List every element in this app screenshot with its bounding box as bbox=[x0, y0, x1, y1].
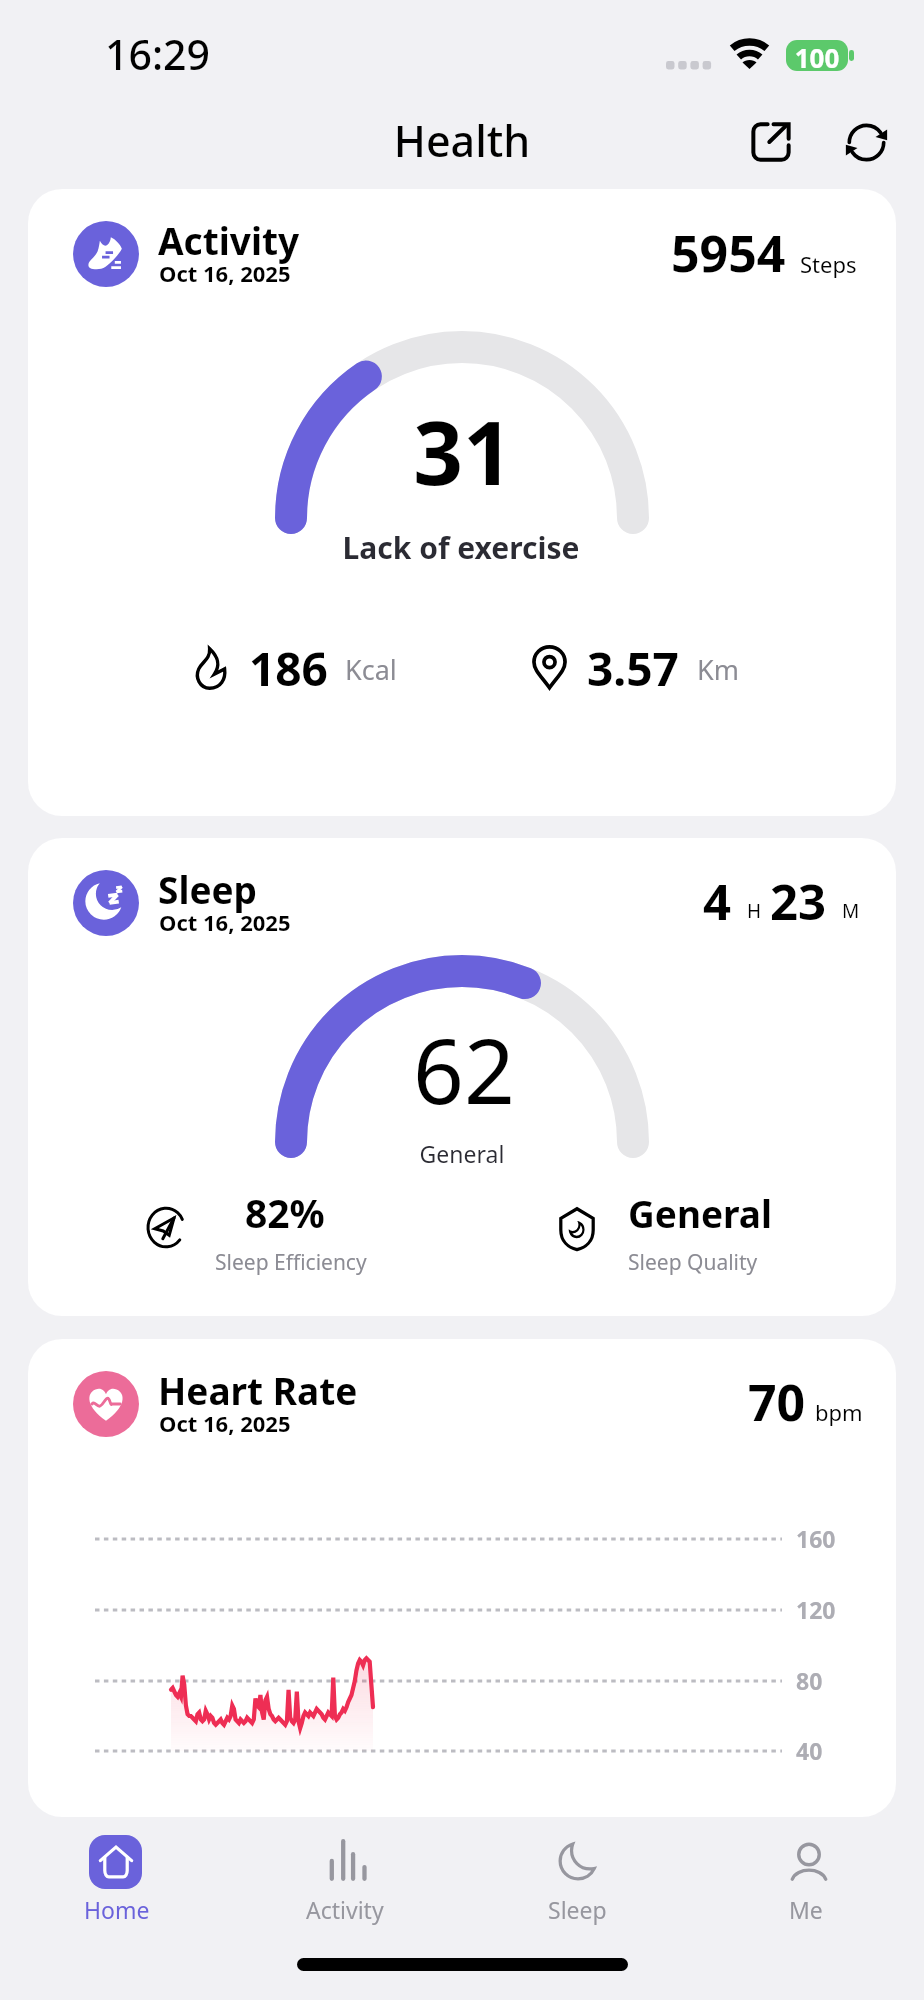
button[interactable] bbox=[759, 1822, 858, 1932]
button[interactable]: Refresh bbox=[829, 105, 903, 179]
staticText: Oct 16, 2025 bbox=[159, 1408, 291, 1438]
staticText: Oct 16, 2025 bbox=[159, 907, 291, 937]
button[interactable] bbox=[528, 1822, 627, 1932]
staticText: Me bbox=[789, 1894, 823, 1925]
staticText: Sleep bbox=[548, 1894, 607, 1925]
staticText: 5954 bbox=[671, 219, 786, 287]
staticText: M bbox=[842, 898, 860, 924]
staticText: 31 bbox=[29, 392, 896, 510]
staticText: 3.57 bbox=[587, 637, 679, 700]
staticText: 70 bbox=[748, 1368, 806, 1436]
staticText: H bbox=[747, 898, 762, 924]
staticText: 16:29 bbox=[105, 26, 210, 82]
staticText: bpm bbox=[815, 1397, 863, 1427]
staticText: Activity bbox=[306, 1894, 384, 1925]
staticText: General bbox=[628, 1188, 773, 1238]
staticText: Steps bbox=[800, 249, 857, 279]
staticText: 160 bbox=[796, 1523, 836, 1554]
staticText: Oct 16, 2025 bbox=[159, 258, 291, 288]
staticText: Home bbox=[84, 1894, 150, 1925]
staticText: Sleep bbox=[158, 864, 257, 914]
staticText: Sleep Efficiency bbox=[215, 1248, 367, 1277]
staticText: Heart Rate bbox=[158, 1365, 358, 1415]
staticText: 120 bbox=[796, 1594, 836, 1625]
button[interactable]: Heart Rate bbox=[28, 1339, 896, 1817]
staticText: 186 bbox=[249, 637, 328, 700]
staticText: Lack of exercise bbox=[28, 527, 895, 568]
button[interactable] bbox=[297, 1822, 396, 1932]
staticText: General bbox=[28, 1138, 896, 1169]
staticText: 40 bbox=[796, 1735, 823, 1766]
staticText: 82% bbox=[245, 1186, 325, 1239]
staticText: Km bbox=[697, 651, 739, 688]
staticText: 62 bbox=[30, 1009, 896, 1130]
staticText: 23 bbox=[770, 868, 827, 935]
staticText: Sleep Quality bbox=[628, 1248, 758, 1277]
staticText: Health bbox=[0, 111, 924, 170]
staticText: Activity bbox=[158, 215, 300, 265]
button[interactable]: Share bbox=[734, 105, 808, 179]
staticText: 80 bbox=[796, 1665, 823, 1696]
button[interactable]: Activity bbox=[28, 189, 896, 816]
staticText: 4 bbox=[703, 868, 732, 935]
staticText: 100 bbox=[786, 40, 848, 71]
button[interactable]: Sleep bbox=[28, 838, 896, 1316]
button[interactable] bbox=[66, 1822, 165, 1932]
staticText: Kcal bbox=[345, 651, 397, 688]
